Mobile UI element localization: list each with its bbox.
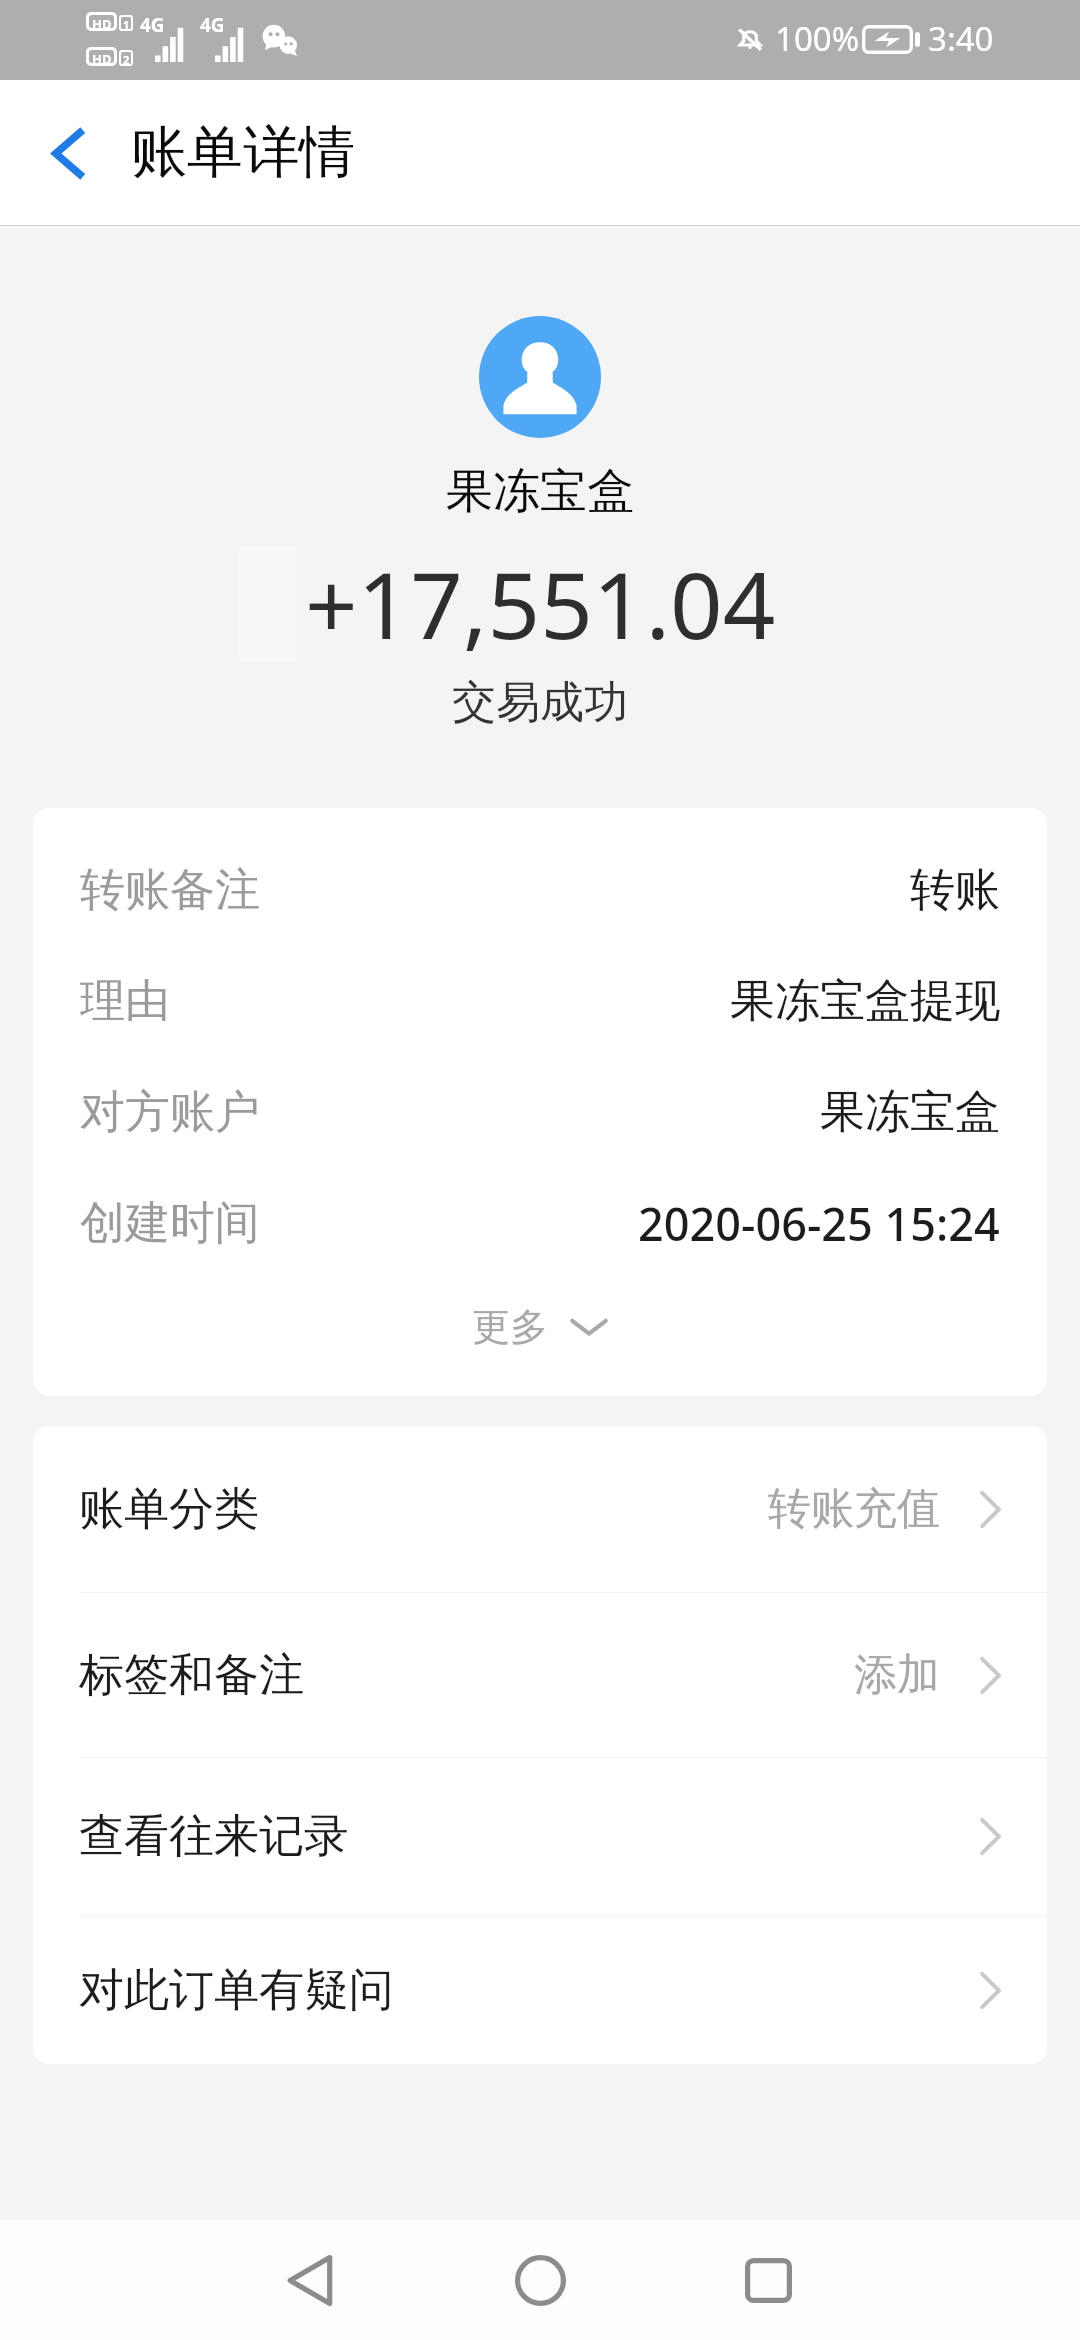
staticText: 转账充值: [768, 1482, 940, 1536]
staticText: 2020-06-25 15:24: [638, 1193, 1000, 1254]
staticText: 添加: [854, 1648, 940, 1702]
staticText: 转账: [910, 862, 1000, 919]
staticText: 3:40: [928, 16, 994, 61]
staticText: 对此订单有疑问: [79, 1962, 394, 2019]
button[interactable]: Back: [239, 2220, 379, 2340]
button[interactable]: 标签和备注: [33, 1593, 1047, 1757]
button[interactable]: 查看往来记录: [33, 1758, 1047, 1915]
staticText: 理由: [80, 973, 170, 1030]
staticText: 1: [123, 17, 130, 29]
staticText: +17,551.04: [305, 541, 776, 666]
staticText: 标签和备注: [79, 1647, 304, 1704]
staticText: 创建时间: [80, 1195, 260, 1252]
button[interactable]: Back: [20, 105, 116, 201]
staticText: HD: [92, 15, 112, 28]
staticText: 果冻宝盒: [446, 462, 634, 521]
staticText: 对方账户: [80, 1084, 260, 1141]
staticText: HD: [92, 50, 112, 63]
staticText: 账单分类: [79, 1481, 259, 1538]
staticText: 果冻宝盒提现: [730, 973, 1000, 1030]
staticText: 交易成功: [452, 675, 628, 730]
button[interactable]: Home: [470, 2220, 610, 2340]
staticText: 查看往来记录: [79, 1808, 349, 1865]
button[interactable]: 更多: [33, 1279, 1047, 1375]
staticText: 果冻宝盒: [820, 1084, 1000, 1141]
staticText: 2: [123, 52, 130, 64]
staticText: 账单详情: [131, 117, 355, 188]
button[interactable]: Recents: [698, 2220, 838, 2340]
staticText: 转账备注: [80, 862, 260, 919]
button[interactable]: 对此订单有疑问: [33, 1916, 1047, 2064]
staticText: 4G: [140, 12, 165, 38]
button[interactable]: 账单分类: [33, 1426, 1047, 1592]
staticText: 4G: [200, 12, 225, 38]
staticText: 100%: [775, 16, 860, 61]
staticText: 更多: [472, 1303, 548, 1351]
